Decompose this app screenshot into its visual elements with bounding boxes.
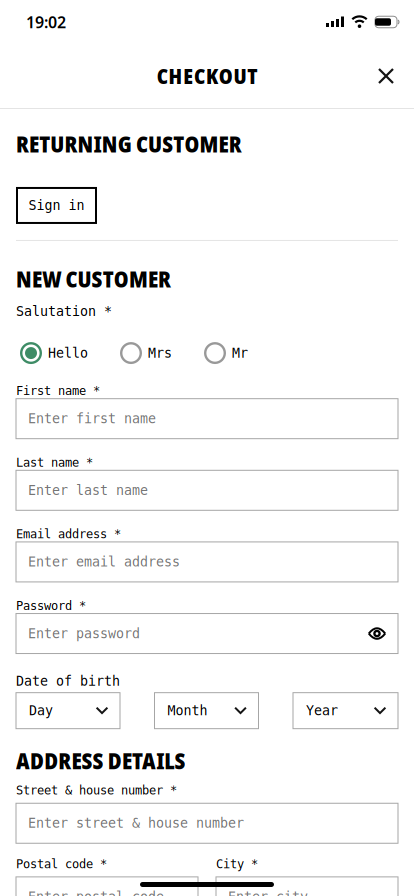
staticText: Street & house number *: [16, 784, 177, 797]
staticText: Enter postal code: [28, 889, 164, 896]
button[interactable]: Show password: [368, 627, 386, 639]
staticText: Enter city: [228, 889, 308, 896]
textField[interactable]: Enter password: [16, 613, 398, 653]
staticText: Sign in: [28, 198, 84, 213]
staticText: Month: [167, 703, 207, 718]
button[interactable]: Month: [154, 693, 258, 729]
staticText: Year: [306, 703, 338, 718]
textField[interactable]: Enter city: [216, 877, 398, 896]
staticText: Enter email address: [28, 554, 180, 569]
button[interactable]: Close: [368, 58, 403, 93]
staticText: CHECKOUT: [157, 62, 257, 90]
staticText: Enter street & house number: [28, 816, 244, 831]
staticText: Password *: [16, 599, 86, 612]
button[interactable]: Day: [16, 693, 120, 729]
staticText: Enter first name: [28, 411, 156, 426]
button[interactable]: Year: [293, 693, 398, 729]
button[interactable]: Hello: [20, 342, 88, 364]
staticText: Hello: [48, 345, 88, 361]
staticText: Day: [29, 703, 53, 718]
button[interactable]: Sign in: [16, 187, 97, 224]
staticText: Date of birth: [16, 673, 120, 689]
staticText: Mr: [232, 345, 248, 361]
staticText: Postal code *: [16, 857, 107, 871]
button[interactable]: Mrs: [120, 342, 172, 364]
staticText: RETURNING CUSTOMER: [16, 129, 242, 159]
textField[interactable]: Enter last name: [16, 470, 398, 510]
staticText: First name *: [16, 384, 100, 398]
staticText: Enter password: [28, 626, 140, 641]
staticText: Last name *: [16, 456, 93, 469]
textField[interactable]: Enter street & house number: [16, 803, 398, 843]
textField[interactable]: Enter postal code: [16, 877, 198, 896]
staticText: Enter last name: [28, 483, 148, 498]
staticText: City *: [216, 857, 258, 871]
staticText: Email address *: [16, 527, 121, 541]
staticText: Salutation *: [16, 304, 112, 319]
staticText: 19:02: [26, 11, 66, 33]
staticText: Mrs: [148, 345, 172, 361]
staticText: ADDRESS DETAILS: [16, 746, 185, 776]
button[interactable]: Mr: [204, 342, 248, 364]
textField[interactable]: Enter first name: [16, 399, 398, 439]
textField[interactable]: Enter email address: [16, 542, 398, 582]
staticText: NEW CUSTOMER: [16, 264, 171, 294]
